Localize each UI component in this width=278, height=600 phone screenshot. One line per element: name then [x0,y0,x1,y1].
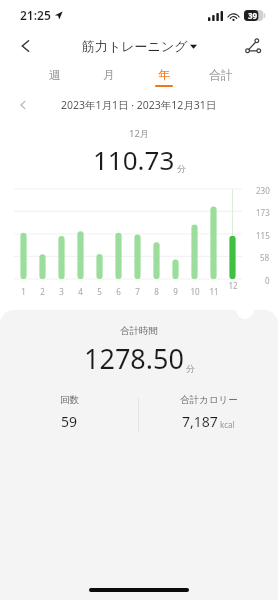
button[interactable]: Previous period [12,94,34,116]
staticText: 回数 [60,394,79,406]
button[interactable]: 週 [46,67,64,87]
button[interactable]: 月 [100,67,118,87]
staticText: 110.73 [93,142,175,177]
staticText: 5 [97,286,102,297]
staticText: kcal [220,419,235,430]
staticText: 月 [103,67,115,82]
staticText: 230 [256,185,270,196]
staticText: 合計カロリー [180,394,238,406]
staticText: 12 [228,280,238,291]
staticText: 58 [260,252,270,263]
button[interactable]: 年 [155,67,173,87]
staticText: 21:25 [20,7,51,23]
button[interactable]: 筋力トレーニング [82,38,197,54]
staticText: 8 [154,286,159,297]
staticText: 1278.50 [84,340,184,377]
button[interactable]: Drag handle [236,301,254,319]
staticText: 分 [177,163,186,174]
staticText: 115 [256,230,270,241]
button[interactable]: Back [10,30,42,62]
button[interactable]: 合計 [209,67,233,87]
staticText: 0 [265,275,270,286]
staticText: 分 [186,363,195,374]
staticText: 合計時間 [120,325,158,337]
staticText: 2023年1月1日 · 2023年12月31日 [61,98,217,112]
button[interactable]: Share [238,31,268,61]
staticText: 39 [248,10,258,21]
staticText: 3 [59,286,64,297]
staticText: 7 [135,286,140,297]
staticText: 6 [116,286,121,297]
staticText: 1 [21,286,26,297]
staticText: 4 [78,286,83,297]
staticText: 週 [49,67,61,82]
staticText: 11 [209,286,219,297]
staticText: 年 [158,67,170,82]
staticText: 9 [173,286,178,297]
staticText: 59 [61,412,78,431]
staticText: 2 [40,286,45,297]
staticText: 10 [190,286,200,297]
staticText: 7,187 [182,412,218,431]
staticText: 12月 [129,127,150,140]
staticText: 合計 [209,67,233,82]
staticText: 筋力トレーニング [82,38,188,54]
staticText: 173 [256,207,270,218]
